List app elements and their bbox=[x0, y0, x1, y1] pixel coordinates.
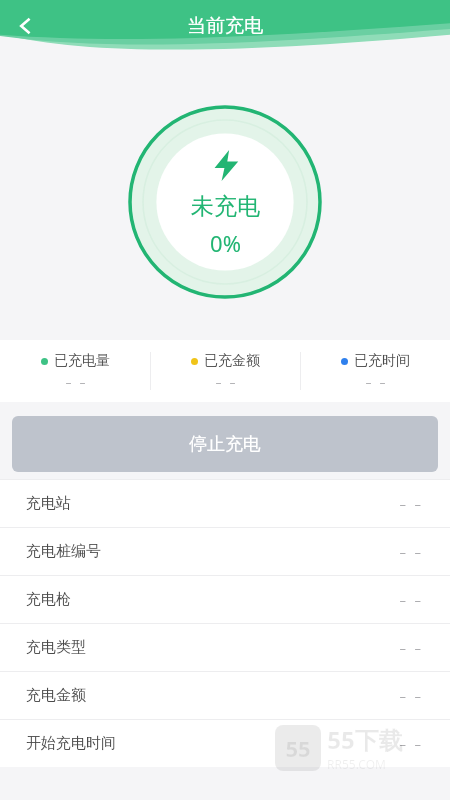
staticText: － － bbox=[363, 375, 388, 390]
staticText: 已充金额 bbox=[204, 352, 260, 370]
staticText: 充电枪 bbox=[26, 590, 71, 609]
button[interactable]: 充电金额 bbox=[0, 672, 450, 719]
staticText: 充电类型 bbox=[26, 638, 86, 657]
button[interactable]: 充电桩编号 bbox=[0, 528, 450, 575]
staticText: 未充电 bbox=[191, 192, 260, 221]
staticText: 0% bbox=[210, 228, 241, 258]
staticText: 开始充电时间 bbox=[26, 734, 116, 753]
staticText: 已充时间 bbox=[354, 352, 410, 370]
staticText: － － bbox=[396, 736, 424, 752]
button[interactable]: 开始充电时间 bbox=[0, 720, 450, 767]
staticText: － － bbox=[396, 544, 424, 560]
staticText: － － bbox=[396, 496, 424, 512]
staticText: RR55.COM bbox=[327, 756, 386, 772]
staticText: 已充电量 bbox=[54, 352, 110, 370]
staticText: 当前充电 bbox=[187, 14, 263, 38]
button[interactable]: 已充电量 bbox=[0, 346, 150, 396]
staticText: 充电金额 bbox=[26, 686, 86, 705]
staticText: 55 bbox=[285, 733, 311, 763]
button[interactable]: 已充时间 bbox=[301, 346, 450, 396]
button[interactable]: 停止充电 bbox=[12, 416, 438, 472]
staticText: － － bbox=[63, 375, 88, 390]
staticText: 55下载 bbox=[327, 723, 403, 756]
staticText: － － bbox=[213, 375, 238, 390]
button[interactable]: Back bbox=[4, 4, 48, 48]
button[interactable]: 充电站 bbox=[0, 480, 450, 527]
button[interactable]: 充电类型 bbox=[0, 624, 450, 671]
staticText: 充电站 bbox=[26, 494, 71, 513]
staticText: 充电桩编号 bbox=[26, 542, 101, 561]
staticText: － － bbox=[396, 688, 424, 704]
staticText: － － bbox=[396, 592, 424, 608]
button[interactable]: 充电枪 bbox=[0, 576, 450, 623]
button[interactable]: 已充金额 bbox=[151, 346, 300, 396]
staticText: － － bbox=[396, 640, 424, 656]
staticText: 停止充电 bbox=[189, 433, 261, 456]
